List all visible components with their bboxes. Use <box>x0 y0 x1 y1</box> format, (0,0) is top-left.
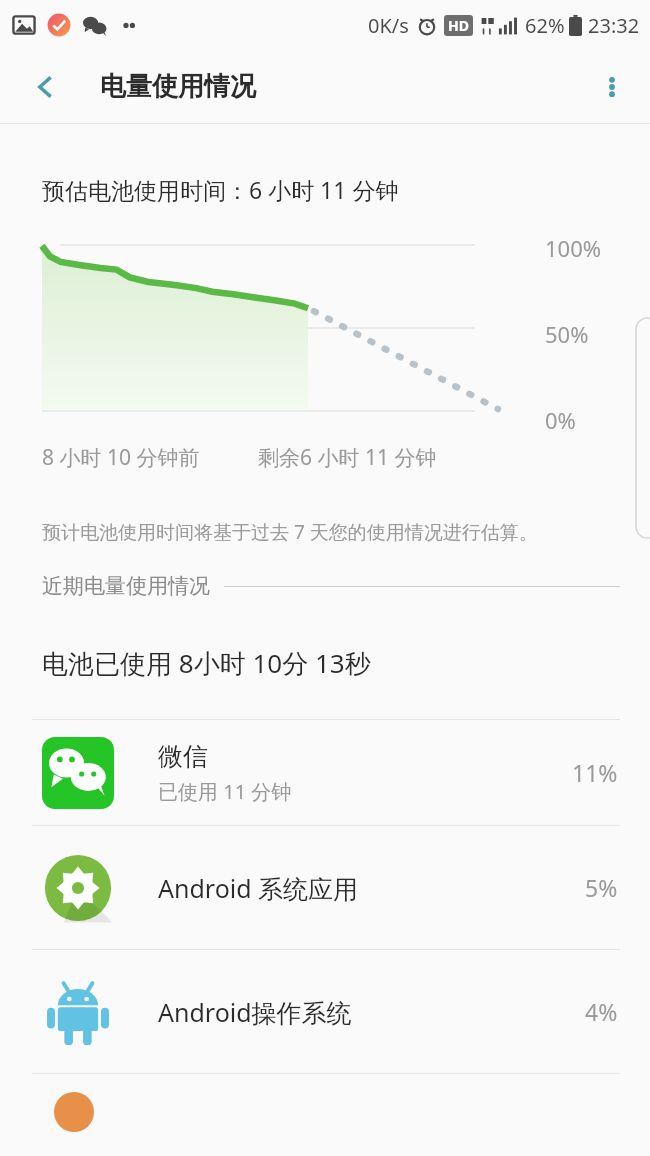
button[interactable]: Back <box>22 63 70 111</box>
staticText: 5% <box>585 872 618 903</box>
staticText: Android操作系统 <box>158 995 352 1029</box>
staticText: 11% <box>572 757 618 788</box>
staticText: 电池已使用 8小时 10分 13秒 <box>42 645 371 681</box>
staticText: 电量使用情况 <box>100 70 256 103</box>
staticText: 23:32 <box>588 12 640 39</box>
staticText: HD <box>448 16 469 35</box>
staticText: 0K/s <box>368 12 409 39</box>
button[interactable]: Android 系统应用 <box>0 826 650 949</box>
staticText: 4% <box>585 996 618 1027</box>
staticText: 0% <box>545 405 576 433</box>
staticText: 近期电量使用情况 <box>42 573 210 599</box>
staticText: 62% <box>525 12 565 39</box>
button[interactable]: 微信 <box>0 720 650 825</box>
button[interactable]: Android操作系统 <box>0 950 650 1073</box>
staticText: 已使用 11 分钟 <box>158 778 292 805</box>
staticText: 8 小时 10 分钟前 <box>42 443 200 472</box>
staticText: 剩余6 小时 11 分钟 <box>258 443 437 472</box>
button[interactable]: More options <box>588 63 636 111</box>
staticText: 微信 <box>158 741 208 772</box>
staticText: 50% <box>545 319 589 349</box>
staticText: 100% <box>545 233 602 263</box>
staticText: 预估电池使用时间：6 小时 11 分钟 <box>42 174 399 205</box>
staticText: 预计电池使用时间将基于过去 7 天您的使用情况进行估算。 <box>42 519 538 545</box>
staticText: Android 系统应用 <box>158 871 359 905</box>
